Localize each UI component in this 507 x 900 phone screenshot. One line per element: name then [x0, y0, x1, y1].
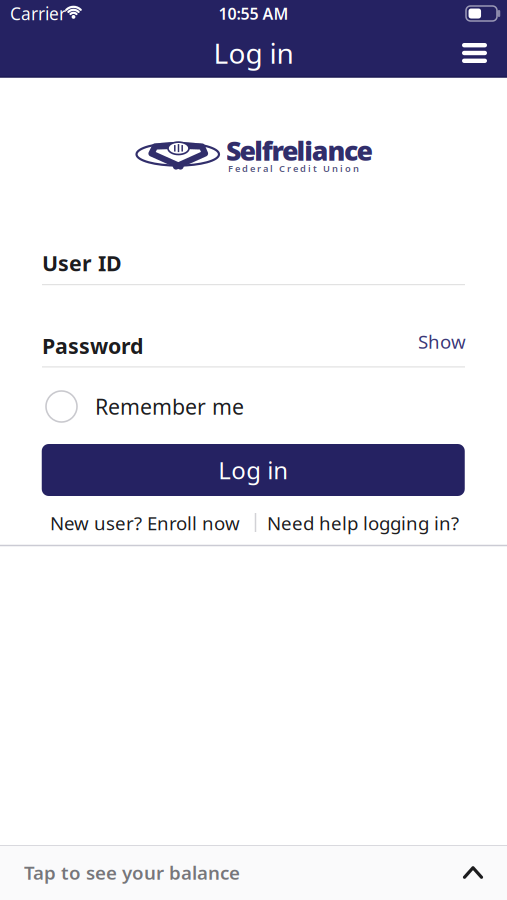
button[interactable]: Tap to see your balance: [0, 845, 507, 900]
staticText: Tap to see your balance: [24, 860, 240, 885]
staticText: 10:55 AM: [218, 3, 288, 24]
staticText: Carrier: [10, 2, 66, 25]
staticText: Log in: [213, 34, 293, 72]
button[interactable]: Show: [418, 329, 466, 354]
button[interactable]: New user? Enroll now: [50, 511, 240, 535]
staticText: Need help logging in?: [267, 511, 459, 535]
staticText: Selfreliance: [226, 133, 373, 168]
staticText: Log in: [218, 454, 288, 486]
button[interactable]: User ID: [42, 249, 465, 285]
button[interactable]: Need help logging in?: [267, 511, 459, 535]
staticText: Show: [418, 329, 466, 354]
staticText: New user? Enroll now: [50, 511, 240, 535]
button[interactable]: Menu: [462, 43, 487, 63]
button[interactable]: Log in: [42, 444, 465, 496]
button[interactable]: Remember me: [46, 391, 244, 422]
staticText: Password: [42, 332, 143, 360]
staticText: User ID: [42, 249, 122, 277]
staticText: F e d e r a l C r e d i t U n i o n: [228, 162, 359, 175]
staticText: Remember me: [95, 392, 244, 421]
button[interactable]: Password: [42, 332, 465, 367]
